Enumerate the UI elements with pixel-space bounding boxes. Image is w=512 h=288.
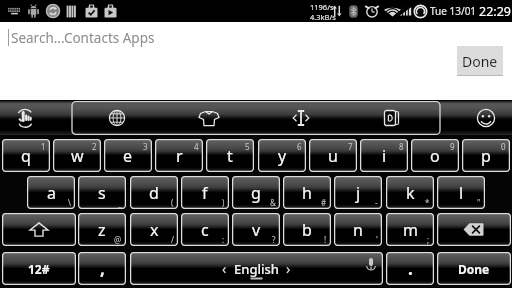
staticText: ‹ bbox=[222, 259, 227, 278]
button[interactable]: b bbox=[283, 213, 331, 246]
staticText: u bbox=[328, 145, 338, 167]
staticText: ) bbox=[222, 197, 225, 208]
button[interactable]: a bbox=[27, 176, 75, 209]
button[interactable]: Language bbox=[73, 101, 164, 135]
staticText: o bbox=[430, 145, 440, 167]
button[interactable]: Done bbox=[437, 252, 511, 285]
staticText: ! bbox=[324, 234, 327, 245]
button[interactable]: w bbox=[53, 139, 101, 172]
staticText: t bbox=[227, 145, 233, 167]
staticText: 12# bbox=[28, 261, 50, 277]
staticText: b bbox=[302, 219, 312, 241]
button[interactable]: y bbox=[258, 139, 306, 172]
staticText: k bbox=[406, 182, 415, 204]
staticText: : bbox=[222, 234, 225, 245]
button[interactable]: x bbox=[130, 213, 178, 246]
button[interactable]: u bbox=[309, 139, 357, 172]
staticText: y bbox=[278, 145, 287, 167]
button[interactable]: Move cursor bbox=[256, 101, 348, 135]
button[interactable]: h bbox=[283, 176, 331, 209]
button[interactable]: Clipboard bbox=[348, 101, 440, 135]
staticText: 9 bbox=[450, 141, 455, 152]
staticText: \ bbox=[68, 197, 71, 208]
staticText: ' bbox=[376, 234, 378, 245]
button[interactable]: , bbox=[78, 252, 126, 285]
button[interactable]: 12# bbox=[2, 252, 76, 285]
staticText: p bbox=[481, 145, 491, 167]
button[interactable]: . bbox=[386, 252, 434, 285]
staticText: c bbox=[201, 219, 209, 241]
button[interactable]: v bbox=[232, 213, 280, 246]
staticText: s bbox=[98, 182, 106, 204]
button[interactable]: r bbox=[155, 139, 203, 172]
button[interactable]: p bbox=[462, 139, 510, 172]
button[interactable]: q bbox=[2, 139, 50, 172]
staticText: 5 bbox=[245, 141, 250, 152]
button[interactable]: l bbox=[437, 176, 485, 209]
staticText: 2 bbox=[92, 141, 97, 152]
staticText: r bbox=[176, 145, 183, 167]
staticText: 1 bbox=[41, 141, 46, 152]
staticText: f bbox=[202, 182, 208, 204]
staticText: Search...Contacts Apps bbox=[11, 29, 155, 47]
staticText: a bbox=[47, 182, 56, 204]
staticText: v bbox=[252, 219, 261, 241]
staticText: - bbox=[375, 197, 378, 208]
staticText: 6 bbox=[297, 141, 302, 152]
button[interactable]: t bbox=[206, 139, 254, 172]
button[interactable]: i bbox=[360, 139, 408, 172]
staticText: d bbox=[149, 182, 159, 204]
staticText: 3 bbox=[143, 141, 148, 152]
staticText: i bbox=[382, 145, 387, 167]
staticText: # bbox=[321, 197, 327, 208]
button[interactable]: n bbox=[334, 213, 382, 246]
button[interactable]: c bbox=[181, 213, 229, 246]
button[interactable]: g bbox=[232, 176, 280, 209]
staticText: 4.3kB/s bbox=[310, 12, 336, 22]
button[interactable]: e bbox=[104, 139, 152, 172]
button[interactable]: o bbox=[411, 139, 459, 172]
staticText: j bbox=[356, 182, 361, 204]
staticText: ? bbox=[272, 234, 276, 245]
staticText: & bbox=[270, 197, 276, 208]
staticText: 8 bbox=[399, 141, 404, 152]
button[interactable]: Handwriting bbox=[0, 101, 72, 135]
button[interactable]: Done bbox=[457, 46, 503, 76]
staticText: g bbox=[251, 182, 261, 204]
button[interactable]: m bbox=[386, 213, 434, 246]
button[interactable]: d bbox=[130, 176, 178, 209]
button[interactable]: f bbox=[181, 176, 229, 209]
staticText: x bbox=[150, 219, 159, 241]
staticText: 0 bbox=[501, 141, 506, 152]
button[interactable]: Backspace bbox=[437, 213, 511, 246]
button[interactable]: k bbox=[386, 176, 434, 209]
staticText: 7 bbox=[348, 141, 353, 152]
button[interactable]: z bbox=[78, 213, 126, 246]
button[interactable]: s bbox=[78, 176, 126, 209]
staticText: English bbox=[234, 260, 279, 278]
staticText: @ bbox=[114, 234, 122, 245]
staticText: z bbox=[98, 219, 106, 241]
staticText: n bbox=[353, 219, 363, 241]
staticText: h bbox=[302, 182, 312, 204]
staticText: w bbox=[71, 145, 84, 167]
staticText: m bbox=[403, 219, 418, 241]
button[interactable]: Space bbox=[130, 252, 383, 285]
button[interactable]: Emoji bbox=[441, 101, 512, 135]
staticText: * bbox=[425, 197, 430, 208]
staticText: , bbox=[100, 257, 105, 280]
staticText: ( bbox=[171, 197, 174, 208]
staticText: 4 bbox=[194, 141, 199, 152]
staticText: 1196/s bbox=[310, 2, 334, 12]
button[interactable]: Shift bbox=[2, 213, 76, 246]
button[interactable]: j bbox=[334, 176, 382, 209]
staticText: ; bbox=[427, 234, 430, 245]
staticText: / bbox=[171, 234, 174, 245]
button[interactable]: Theme bbox=[164, 101, 256, 135]
staticText: Done bbox=[462, 52, 498, 71]
staticText: Done bbox=[458, 261, 490, 277]
staticText: . bbox=[408, 257, 413, 280]
staticText: › bbox=[286, 259, 291, 278]
staticText: q bbox=[21, 145, 31, 167]
staticText: e bbox=[123, 145, 133, 167]
